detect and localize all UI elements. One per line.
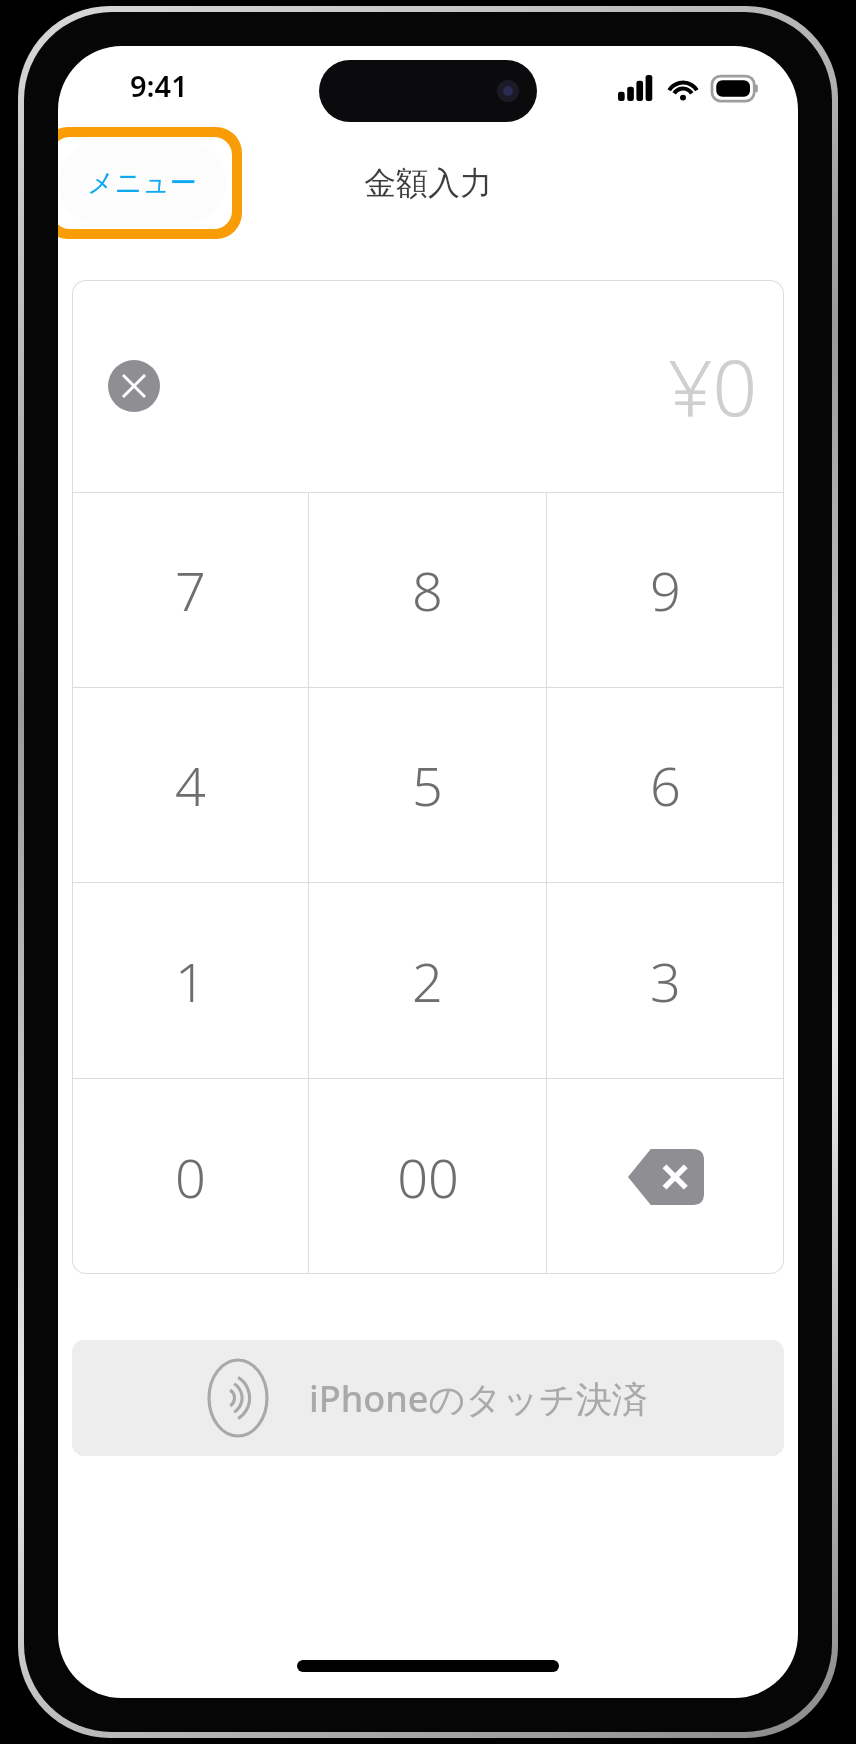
staticText: 0 — [175, 1140, 206, 1214]
staticText: 6 — [650, 748, 681, 822]
button[interactable]: Clear amount — [108, 360, 160, 412]
staticText: 9 — [650, 553, 681, 627]
button[interactable]: 8 — [309, 493, 546, 687]
button[interactable]: Delete — [547, 1079, 784, 1274]
staticText: 4 — [175, 748, 206, 822]
button[interactable]: 3 — [547, 883, 784, 1078]
button[interactable]: 9 — [547, 493, 784, 687]
staticText: 金額入力 — [364, 163, 492, 203]
button[interactable]: 6 — [547, 688, 784, 882]
button[interactable]: 1 — [72, 883, 308, 1078]
staticText: 9:41 — [130, 66, 188, 105]
staticText: 3 — [650, 944, 681, 1018]
staticText: iPhoneのタッチ決済 — [309, 1374, 648, 1423]
button[interactable]: 5 — [309, 688, 546, 882]
staticText: メニュー — [87, 166, 197, 200]
button[interactable]: メニュー — [58, 137, 232, 229]
staticText: 2 — [412, 944, 443, 1018]
button[interactable]: 0 — [72, 1079, 308, 1274]
staticText: 00 — [397, 1140, 459, 1214]
staticText: ¥0 — [668, 333, 758, 439]
button[interactable]: 2 — [309, 883, 546, 1078]
button[interactable]: iPhoneのタッチ決済 — [72, 1340, 784, 1456]
staticText: 8 — [412, 553, 443, 627]
staticText: 5 — [412, 748, 443, 822]
button[interactable]: 7 — [72, 493, 308, 687]
button[interactable]: 4 — [72, 688, 308, 882]
staticText: 7 — [175, 553, 206, 627]
button[interactable]: 00 — [309, 1079, 546, 1274]
staticText: 1 — [175, 944, 206, 1018]
